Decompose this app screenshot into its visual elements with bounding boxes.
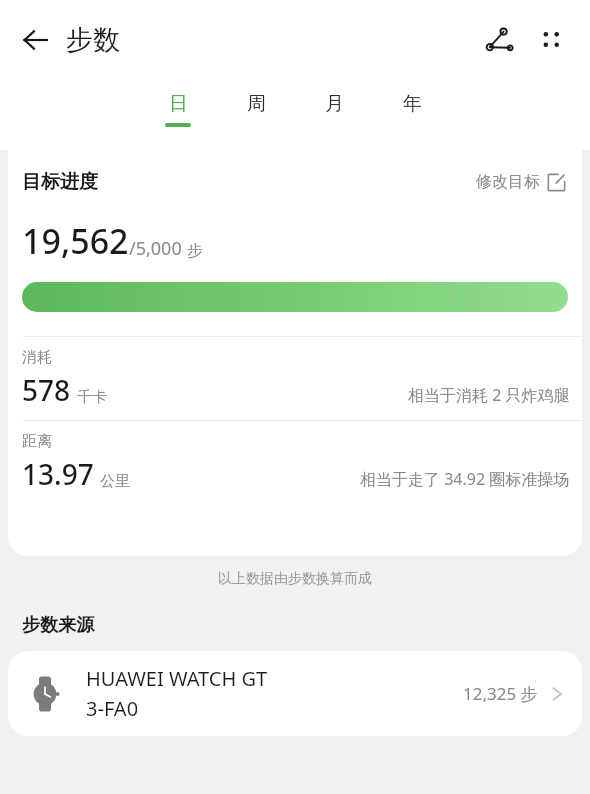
button[interactable]: Back (12, 16, 60, 64)
staticText: 年 (403, 92, 422, 116)
staticText: 目标进度 (22, 170, 98, 194)
staticText: 千卡 (77, 388, 107, 407)
button[interactable]: 日 (150, 88, 206, 131)
staticText: HUAWEI WATCH GT 3-FA0 (86, 665, 268, 722)
staticText: 消耗 (22, 348, 52, 367)
button[interactable]: 周 (228, 88, 284, 127)
staticText: 公里 (100, 472, 130, 491)
staticText: 月 (325, 92, 344, 116)
staticText: 步数 (66, 23, 120, 57)
button[interactable]: More options (526, 15, 576, 65)
button[interactable]: 年 (384, 88, 440, 127)
staticText: 以上数据由步数换算而成 (0, 570, 590, 588)
staticText: 距离 (22, 432, 52, 451)
staticText: 步数来源 (22, 614, 94, 637)
staticText: 日 (169, 92, 188, 116)
button[interactable]: Share (474, 14, 526, 66)
staticText: /5,000 (129, 236, 182, 261)
staticText: 步 (187, 241, 203, 261)
button[interactable]: 月 (306, 88, 362, 127)
button[interactable]: 消耗 (8, 337, 582, 420)
staticText: 578 (22, 371, 71, 409)
staticText: 12,325 步 (463, 682, 538, 705)
button[interactable]: HUAWEI WATCH GT 3-FA0 (8, 651, 582, 736)
staticText: 修改目标 (476, 172, 540, 192)
staticText: 13.97 (22, 455, 94, 493)
staticText: 周 (247, 92, 266, 116)
button[interactable]: 修改目标 (474, 168, 568, 196)
button[interactable]: 距离 (8, 421, 582, 504)
staticText: 19,562 (22, 218, 129, 264)
staticText: 相当于消耗 2 只炸鸡腿 (408, 384, 570, 406)
staticText: 相当于走了 34.92 圈标准操场 (360, 468, 570, 490)
